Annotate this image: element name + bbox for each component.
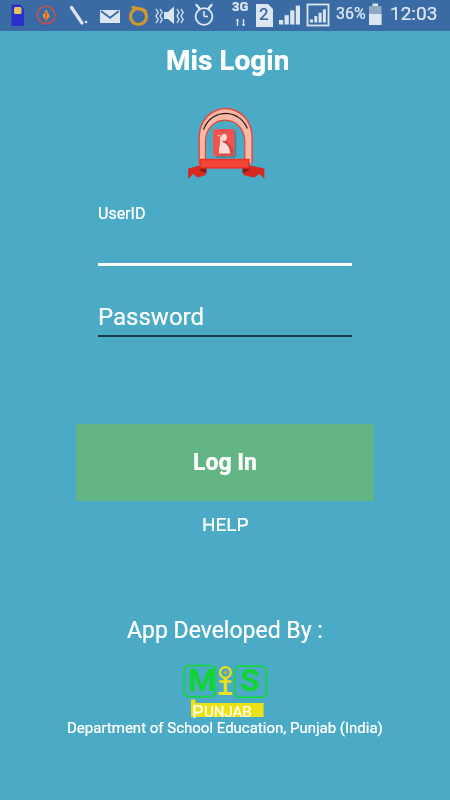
button[interactable]: Password bbox=[98, 296, 352, 337]
staticText: 2 bbox=[259, 4, 269, 24]
staticText: HELP bbox=[202, 513, 249, 535]
staticText: UserID bbox=[98, 204, 146, 223]
staticText: Department of School Education, Punjab (… bbox=[67, 719, 383, 737]
staticText: Password bbox=[98, 303, 205, 331]
button[interactable]: UserID bbox=[98, 196, 352, 266]
button[interactable]: HELP bbox=[190, 508, 261, 540]
staticText: 12:03 bbox=[390, 2, 438, 24]
staticText: App Developed By : bbox=[127, 617, 323, 644]
other: MIS Punjab logo bbox=[183, 664, 267, 716]
button[interactable]: Log In bbox=[76, 424, 374, 501]
staticText: Log In bbox=[193, 449, 257, 476]
staticText: 36% bbox=[336, 4, 366, 23]
staticText: S bbox=[240, 661, 260, 699]
other: e-Punjab School Education logo bbox=[188, 105, 264, 178]
staticText: Mis Login bbox=[166, 44, 290, 77]
staticText: 3G bbox=[232, 0, 249, 14]
staticText: M bbox=[188, 661, 217, 699]
staticText: UNJAB bbox=[204, 703, 252, 721]
staticText: P bbox=[192, 701, 204, 722]
